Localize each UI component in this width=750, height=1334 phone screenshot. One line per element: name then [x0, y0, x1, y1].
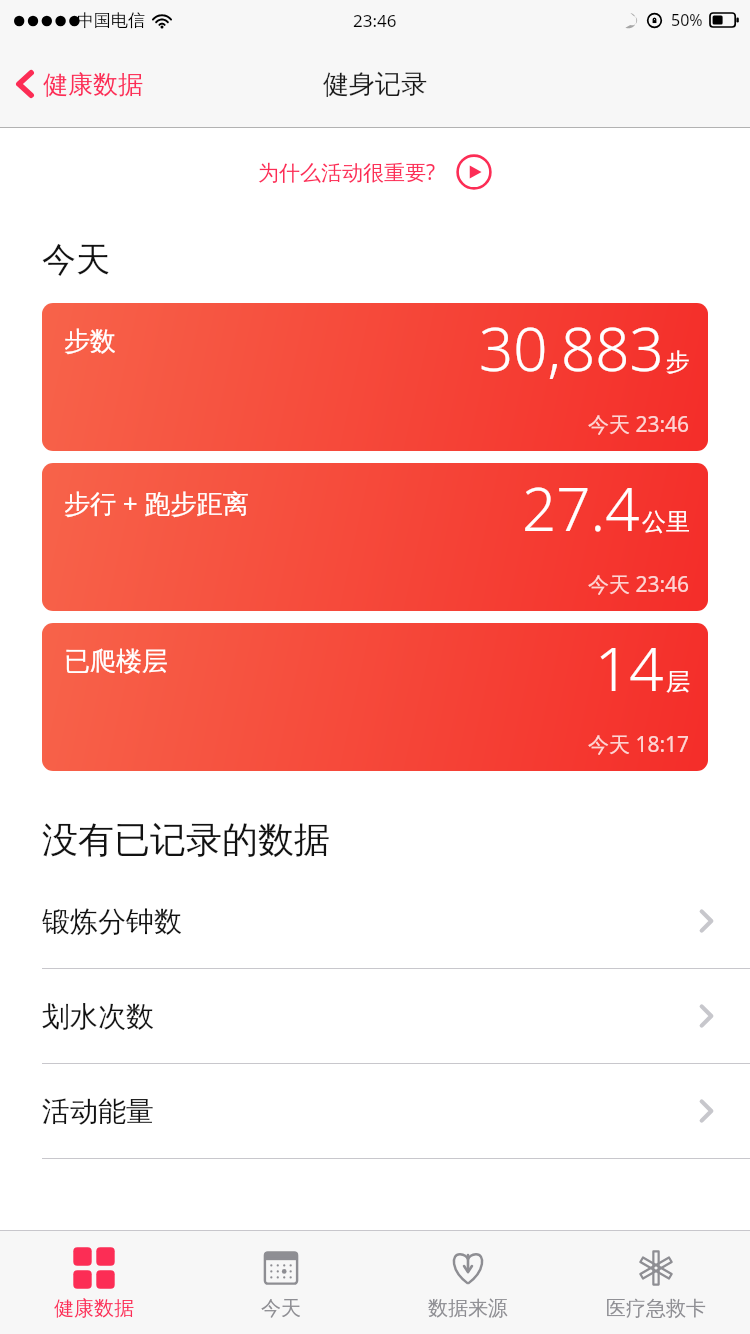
staticText: 今天: [42, 238, 110, 281]
staticText: 健身记录: [323, 68, 427, 101]
button[interactable]: 活动能量: [0, 1064, 750, 1159]
staticText: 为什么活动很重要?: [258, 158, 436, 187]
staticText: 今天: [261, 1296, 301, 1321]
staticText: 今天 18:17: [588, 730, 690, 759]
staticText: 没有已记录的数据: [42, 817, 330, 862]
button[interactable]: 为什么活动很重要?: [0, 154, 750, 190]
staticText: 健康数据: [54, 1296, 134, 1321]
staticText: 中国电信: [77, 10, 145, 31]
staticText: 步: [666, 347, 690, 377]
button[interactable]: 健康数据: [0, 1231, 187, 1334]
staticText: 医疗急救卡: [606, 1296, 706, 1321]
staticText: 公里: [642, 507, 690, 537]
button[interactable]: 已爬楼层: [42, 623, 708, 771]
staticText: 27.4: [522, 467, 640, 549]
staticText: 步数: [64, 325, 116, 358]
button[interactable]: 步行 + 跑步距离: [42, 463, 708, 611]
staticText: 50%: [671, 9, 703, 31]
button[interactable]: 今天: [187, 1231, 374, 1334]
staticText: 数据来源: [428, 1296, 508, 1321]
staticText: 步行 + 跑步距离: [64, 485, 249, 521]
staticText: 23:46: [353, 9, 397, 32]
staticText: 锻炼分钟数: [42, 904, 182, 939]
staticText: 今天 23:46: [588, 410, 690, 439]
button[interactable]: 划水次数: [0, 969, 750, 1064]
button[interactable]: 步数: [42, 303, 708, 451]
staticText: 划水次数: [42, 999, 154, 1034]
button[interactable]: 锻炼分钟数: [0, 874, 750, 969]
staticText: 健康数据: [43, 69, 143, 100]
button[interactable]: 医疗急救卡: [562, 1231, 750, 1334]
staticText: 层: [666, 667, 690, 697]
staticText: 14: [595, 627, 664, 709]
staticText: 今天 23:46: [588, 570, 690, 599]
button[interactable]: 健康数据: [0, 59, 155, 109]
button[interactable]: 数据来源: [374, 1231, 562, 1334]
staticText: 活动能量: [42, 1094, 154, 1129]
staticText: 30,883: [479, 307, 664, 389]
staticText: 已爬楼层: [64, 645, 168, 678]
